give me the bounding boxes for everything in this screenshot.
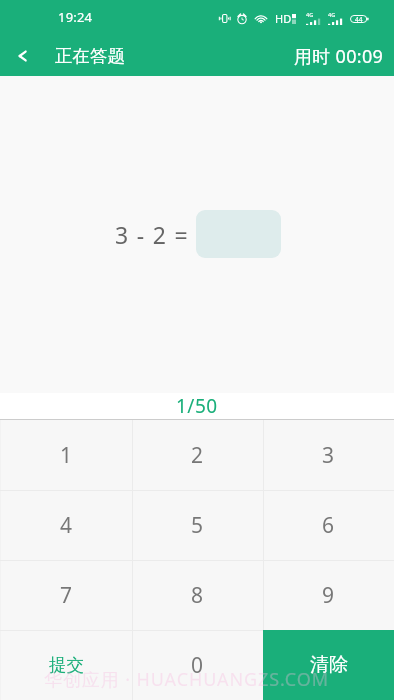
button[interactable]: 4 [0, 490, 132, 560]
button[interactable]: 清除 [263, 630, 394, 700]
button[interactable]: 1 [0, 420, 132, 490]
staticText: 9 [322, 581, 335, 610]
staticText: 8 [191, 581, 204, 610]
staticText: 1 [60, 441, 73, 470]
button[interactable]: 7 [0, 560, 132, 630]
button[interactable]: Back [0, 36, 46, 76]
button[interactable]: 8 [132, 560, 263, 630]
staticText: 3 - 2 = [115, 219, 189, 250]
staticText: 6 [322, 511, 335, 540]
staticText: 44 [355, 15, 363, 23]
button[interactable]: Answer field [196, 210, 281, 258]
button[interactable]: 2 [132, 420, 263, 490]
button[interactable]: 0 [132, 630, 263, 700]
button[interactable]: 提交 [0, 630, 132, 700]
button[interactable]: 9 [263, 560, 394, 630]
staticText: 华创应用 · HUACHUANGZS.COM [44, 667, 329, 692]
button[interactable]: 3 [263, 420, 394, 490]
staticText: 7 [60, 581, 73, 610]
staticText: 提交 [49, 654, 84, 676]
staticText: HD [275, 11, 292, 26]
staticText: 5 [191, 511, 204, 540]
staticText: 19:24 [58, 8, 93, 26]
staticText: 用时 00:09 [294, 44, 384, 69]
staticText: 4G [306, 11, 314, 18]
staticText: 3 [322, 441, 335, 470]
staticText: 2 [191, 441, 204, 470]
staticText: 0 [191, 651, 204, 680]
button[interactable]: 5 [132, 490, 263, 560]
staticText: 清除 [310, 653, 348, 677]
staticText: 4G [328, 11, 336, 18]
staticText: 华创应用 · HUACHUANGZS.COM [44, 667, 329, 692]
staticText: 4 [60, 511, 73, 540]
button[interactable]: 6 [263, 490, 394, 560]
staticText: 正在答题 [55, 45, 125, 67]
staticText: 1/50 [176, 393, 218, 419]
